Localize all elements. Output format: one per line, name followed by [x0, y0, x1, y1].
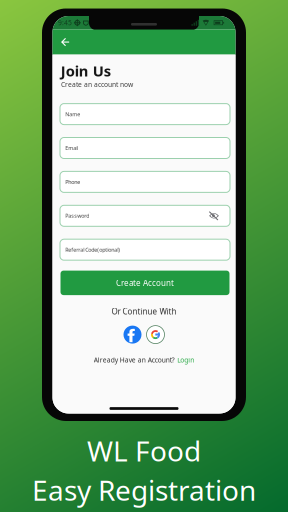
staticText: Create an account now — [61, 80, 133, 89]
staticText: Email — [65, 144, 78, 152]
staticText: Join Us — [61, 61, 111, 81]
staticText: WL Food — [87, 432, 201, 469]
staticText: Referral Code(optional) — [65, 246, 120, 253]
button[interactable]: Continue with Google — [146, 326, 164, 344]
button[interactable]: Back — [53, 29, 77, 55]
button[interactable]: Name — [60, 104, 230, 125]
staticText: Or Continue With — [111, 306, 176, 317]
button[interactable]: Already Have an Account? — [94, 356, 194, 364]
staticText: Phone — [65, 178, 80, 185]
button[interactable]: Email — [60, 137, 230, 158]
staticText: Password — [65, 212, 89, 219]
staticText: Create Account — [116, 277, 174, 288]
staticText: Already Have an Account? — [94, 356, 175, 364]
staticText: Name — [65, 111, 80, 118]
button[interactable]: Referral Code(optional) — [60, 239, 230, 260]
button[interactable]: Create Account — [60, 271, 229, 295]
button[interactable]: Phone — [60, 171, 230, 192]
button[interactable]: Continue with Facebook — [123, 326, 141, 344]
button[interactable]: Password — [60, 205, 230, 226]
staticText: Login — [177, 356, 194, 364]
staticText: 9:45 — [58, 18, 72, 27]
staticText: Easy Registration — [32, 471, 256, 508]
